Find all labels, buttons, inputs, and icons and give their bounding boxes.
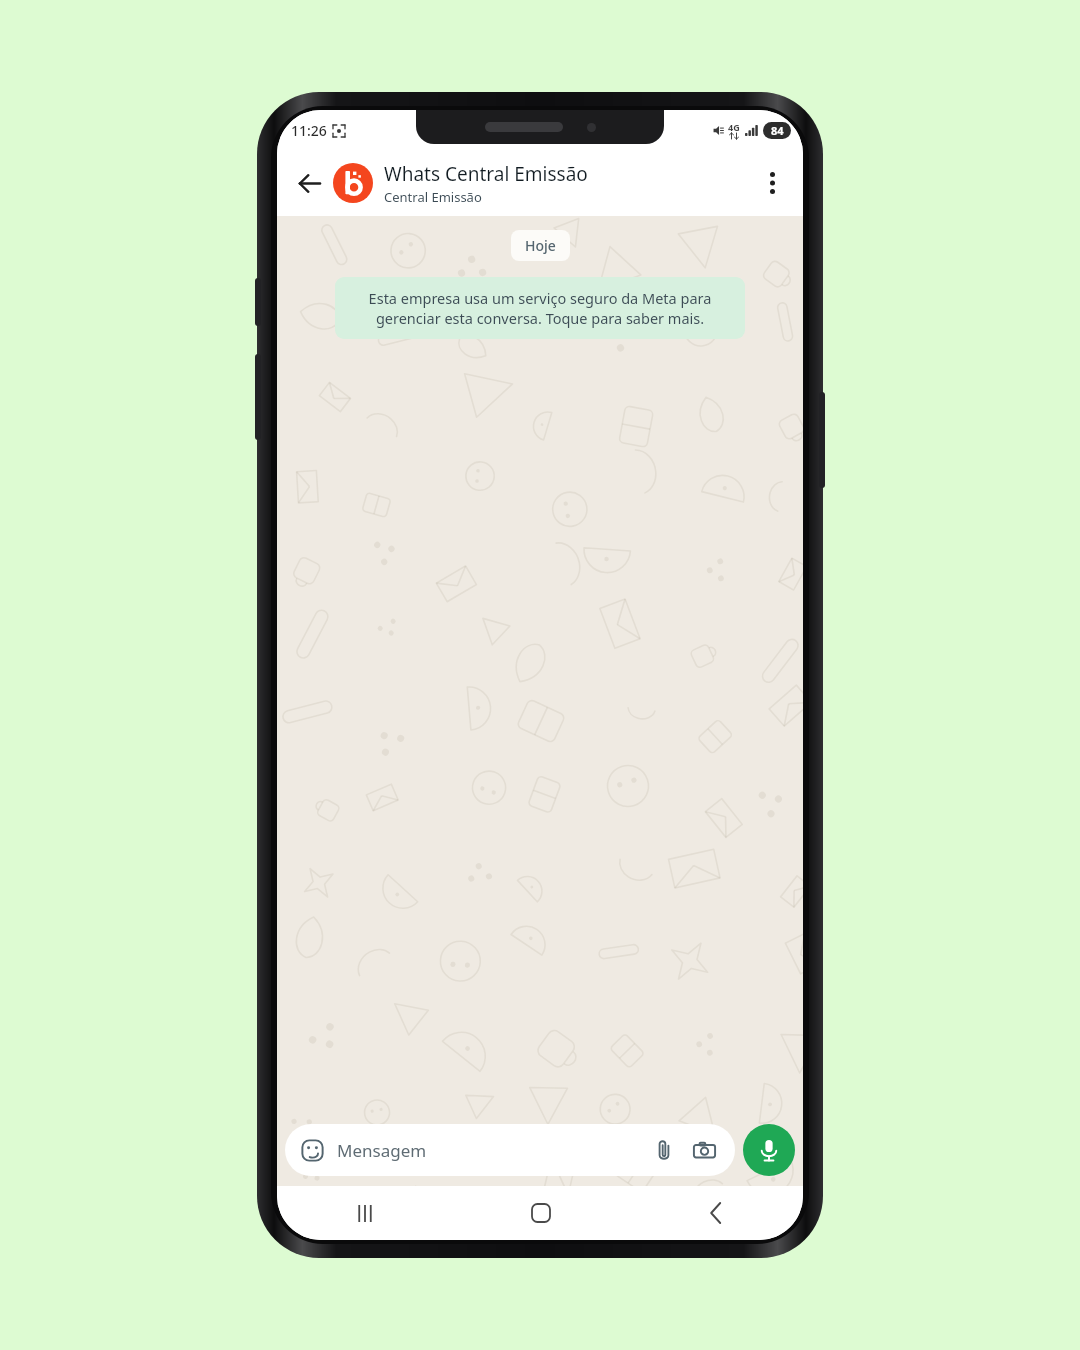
button[interactable]: More options: [751, 162, 793, 204]
button[interactable]: Emoji: [285, 1124, 735, 1176]
button[interactable]: Recent apps: [277, 1186, 453, 1240]
button[interactable]: Emoji: [297, 1135, 327, 1165]
staticText: 11:26: [291, 121, 327, 140]
button[interactable]: Record voice message: [743, 1124, 795, 1176]
staticText: Central Emissão: [384, 188, 482, 206]
button[interactable]: Profile photo: [333, 163, 373, 203]
button[interactable]: Hoje: [511, 230, 570, 261]
button[interactable]: Back: [628, 1186, 803, 1240]
button[interactable]: Home: [453, 1186, 628, 1240]
button[interactable]: Whats Central Emissão: [384, 161, 751, 206]
button[interactable]: Back: [287, 161, 331, 205]
button[interactable]: Camera: [687, 1133, 721, 1167]
staticText: Hoje: [525, 236, 556, 255]
staticText: Esta empresa usa um serviço seguro da Me…: [351, 288, 729, 328]
staticText: Whats Central Emissão: [384, 161, 588, 187]
staticText: 4G: [728, 121, 740, 133]
button[interactable]: Esta empresa usa um serviço seguro da Me…: [335, 277, 745, 339]
staticText: 84: [771, 123, 784, 138]
button[interactable]: Attach: [647, 1133, 681, 1167]
staticText: Mensagem: [337, 1139, 647, 1162]
